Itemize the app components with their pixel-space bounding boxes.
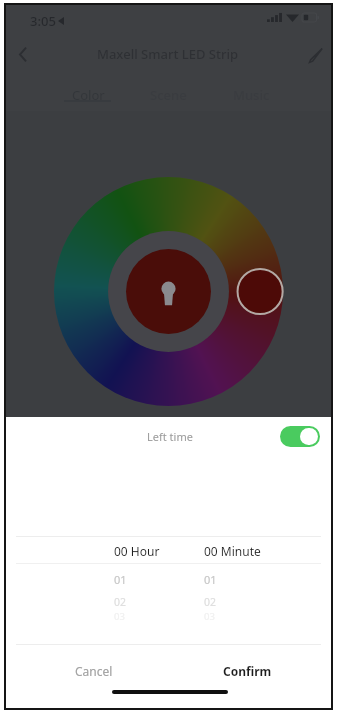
staticText: 00 Minute bbox=[204, 543, 261, 559]
staticText: Left time bbox=[147, 429, 193, 444]
button[interactable]: Left time toggle bbox=[280, 426, 320, 447]
staticText: 00 Hour bbox=[114, 543, 160, 559]
staticText: 03 bbox=[114, 610, 125, 623]
staticText: Maxell Smart LED Strip bbox=[97, 45, 239, 63]
staticText: 01 bbox=[204, 572, 217, 587]
button[interactable]: Back bbox=[10, 41, 36, 67]
button[interactable]: Cancel bbox=[56, 658, 131, 684]
staticText: 03 bbox=[204, 610, 215, 623]
staticText: 02 bbox=[204, 595, 217, 609]
button[interactable]: Edit bbox=[303, 42, 329, 68]
button[interactable]: Confirm bbox=[210, 658, 285, 684]
staticText: 01 bbox=[114, 572, 127, 587]
staticText: Cancel bbox=[75, 663, 113, 679]
staticText: Color bbox=[72, 86, 105, 104]
staticText: Confirm bbox=[223, 663, 272, 679]
staticText: 3:05 bbox=[30, 12, 56, 30]
staticText: 02 bbox=[114, 595, 127, 609]
